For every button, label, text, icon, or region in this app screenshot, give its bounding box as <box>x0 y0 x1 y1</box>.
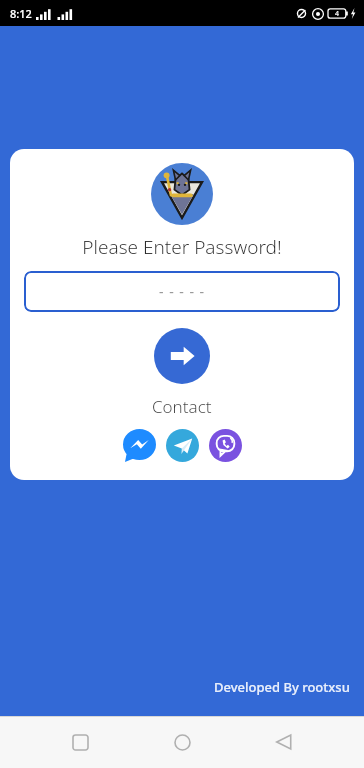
staticText: 4 <box>335 9 340 19</box>
button[interactable]: Home <box>160 720 204 764</box>
staticText: Developed By rootxsu <box>214 678 350 696</box>
staticText: Please Enter Password! <box>82 234 282 260</box>
button[interactable]: Telegram <box>166 429 199 462</box>
staticText: - - - - - <box>159 282 206 301</box>
button[interactable]: Submit password <box>154 328 210 384</box>
button[interactable]: Recent apps <box>58 720 102 764</box>
staticText: Contact <box>152 395 212 418</box>
button[interactable]: Viber <box>209 429 242 462</box>
staticText: 8:12 <box>10 6 32 21</box>
button[interactable]: - - - - - <box>24 271 340 312</box>
button[interactable]: Messenger <box>123 429 156 462</box>
button[interactable]: Back <box>262 720 306 764</box>
